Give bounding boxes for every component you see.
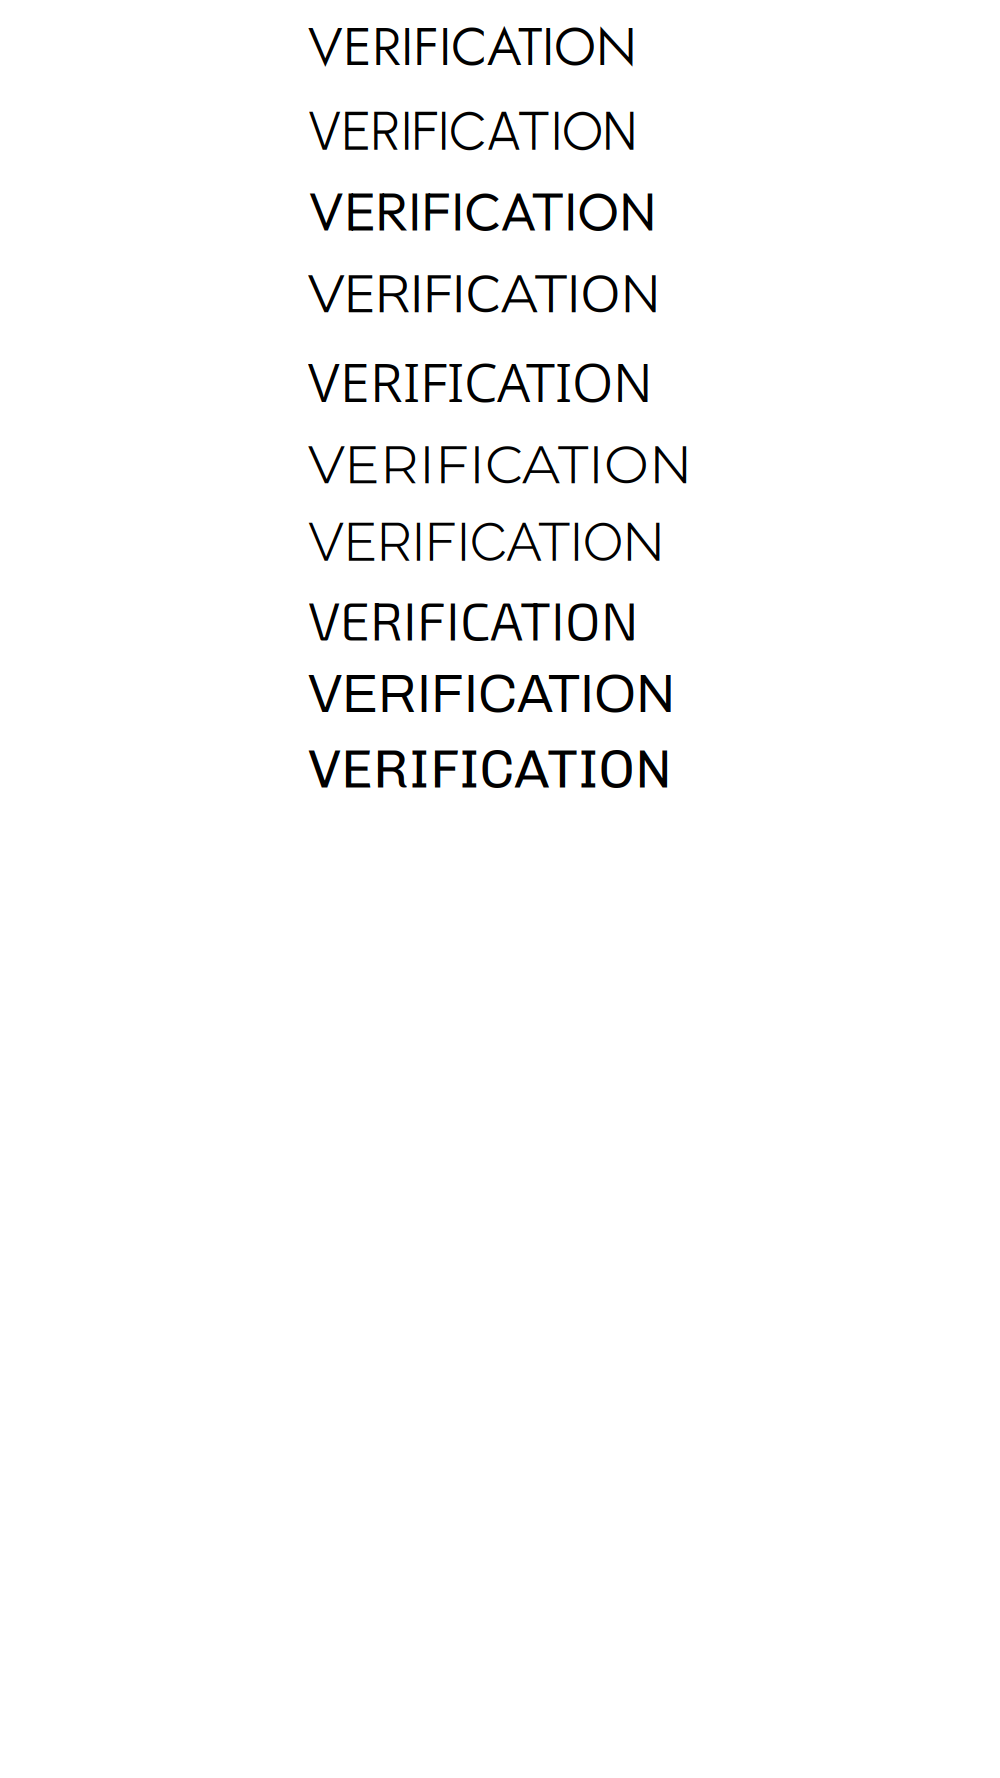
staticText: VERIFICATION — [308, 432, 692, 497]
staticText: VERIFICATION — [308, 737, 672, 801]
staticText: VERIFICATION — [308, 258, 660, 331]
staticText: VERIFICATION — [308, 665, 675, 723]
staticText: VERIFICATION — [308, 587, 638, 651]
staticText: VERIFICATION — [308, 511, 664, 573]
staticText: VERIFICATION — [308, 8, 637, 85]
staticText: VERIFICATION — [308, 177, 657, 244]
staticText: VERIFICATION — [308, 99, 637, 163]
staticText: VERIFICATION — [308, 345, 653, 418]
